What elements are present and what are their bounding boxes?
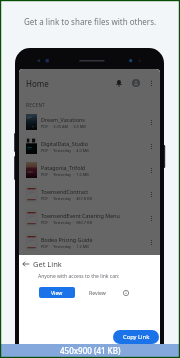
button[interactable]: TownsendContract [19,182,160,206]
staticText: PDF · Yesterday · 1.2 MB [41,244,89,249]
staticText: Review [89,289,106,296]
button[interactable]: More [146,189,157,200]
button[interactable]: DigitalData_Studio [19,134,160,158]
button[interactable]: Review [79,287,116,298]
staticText: Anyone with access to the link can: [38,273,120,280]
staticText: Copy Link [123,333,150,341]
button[interactable]: More [146,213,157,224]
staticText: View [51,289,63,296]
button[interactable]: Bodea Pricing Guide [19,230,160,254]
staticText: Get Link [33,259,62,269]
button[interactable]: Dream_Vacations [19,110,160,134]
button[interactable]: TownsendEvent Catering Menu [19,206,160,230]
staticText: DigitalData_Studio [41,140,88,147]
staticText: Home [26,78,49,89]
button[interactable]: Info [121,288,131,298]
button[interactable]: View [39,287,75,298]
staticText: Get a link to share files with others. [24,16,157,27]
staticText: PDF · 3:30 AM · 3.6 MB [41,124,86,129]
button[interactable]: More [146,117,157,128]
button[interactable]: More [146,165,157,176]
staticText: Dream_Vacations [41,116,85,123]
staticText: PDF · Yesterday · 580.7 KB [41,220,93,225]
button[interactable]: More options [146,78,157,89]
staticText: RECENT [26,102,46,108]
button[interactable]: Notifications [113,77,125,89]
button[interactable]: Patagonia_Trifold [19,158,160,182]
staticText: PDF · Yesterday · 4.0 MB [41,148,89,153]
button[interactable]: Copy Link [113,330,159,344]
button[interactable]: Account [130,77,142,89]
button[interactable]: More [146,141,157,152]
staticText: PDF · Yesterday · 457.8 KB [41,196,93,201]
staticText: 450x900 (41 KB) [60,345,121,356]
staticText: Patagonia_Trifold [41,164,86,171]
button[interactable]: Back [19,257,33,271]
staticText: PDF · Yesterday · 1.6 MB [41,172,89,177]
staticText: TownsendEvent Catering Menu [41,212,120,219]
staticText: TownsendContract [41,188,89,195]
staticText: Bodea Pricing Guide [41,236,93,243]
button[interactable]: More [146,237,157,248]
